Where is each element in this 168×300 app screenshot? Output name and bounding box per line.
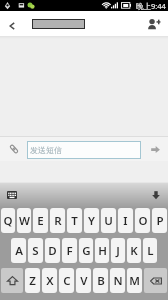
button[interactable]: N <box>110 268 125 293</box>
button[interactable]: F <box>62 238 77 263</box>
staticText: C <box>63 273 71 289</box>
staticText: H <box>98 243 107 259</box>
staticText: N <box>113 273 123 289</box>
button[interactable]: V <box>76 268 91 293</box>
staticText: G <box>82 243 91 259</box>
button[interactable]: C <box>59 268 74 293</box>
button[interactable]: Backspace <box>144 268 167 293</box>
button[interactable]: Z <box>25 268 40 293</box>
button[interactable]: 发送短信 <box>27 141 141 159</box>
staticText: I <box>123 213 128 229</box>
staticText: P <box>156 213 164 229</box>
button[interactable]: X <box>42 268 57 293</box>
button[interactable]: Back <box>0 11 32 36</box>
button[interactable]: Add contact <box>140 11 168 36</box>
staticText: F <box>66 243 73 259</box>
button[interactable]: Keyboard <box>5 188 19 202</box>
button[interactable]: O <box>135 208 150 233</box>
staticText: Z <box>29 273 36 289</box>
staticText: X <box>46 273 54 289</box>
button[interactable]: J <box>111 238 125 263</box>
button[interactable]: D <box>45 238 60 263</box>
staticText: K <box>130 243 138 259</box>
staticText: R <box>54 213 62 229</box>
staticText: L <box>147 243 154 259</box>
button[interactable]: E <box>33 208 48 233</box>
button[interactable]: T <box>67 208 82 233</box>
button[interactable]: S <box>28 238 43 263</box>
staticText: M <box>129 273 140 289</box>
button[interactable]: U <box>101 208 116 233</box>
staticText: A <box>15 243 23 259</box>
staticText: Y <box>88 213 95 229</box>
staticText: B <box>97 273 105 289</box>
staticText: E <box>37 213 44 229</box>
button[interactable]: Y <box>84 208 99 233</box>
staticText: S <box>32 243 39 259</box>
staticText: D <box>48 243 57 259</box>
staticText: 晚上9:44 <box>136 1 166 11</box>
button[interactable]: I <box>118 208 133 233</box>
staticText: O <box>138 213 148 229</box>
button[interactable]: Shift <box>1 268 23 293</box>
button[interactable]: A <box>11 238 26 263</box>
button[interactable]: W <box>17 208 31 233</box>
button[interactable]: G <box>79 238 93 263</box>
button[interactable]: H <box>95 238 109 263</box>
button[interactable]: P <box>152 208 167 233</box>
staticText: J <box>116 243 120 259</box>
staticText: U <box>104 213 113 229</box>
staticText: Q <box>3 213 13 229</box>
staticText: 发送短信 <box>30 145 62 155</box>
button[interactable]: K <box>127 238 141 263</box>
button[interactable]: B <box>93 268 108 293</box>
staticText: V <box>80 273 88 289</box>
button[interactable]: M <box>127 268 142 293</box>
button[interactable]: Attach <box>0 137 27 161</box>
button[interactable]: L <box>143 238 157 263</box>
button[interactable]: Q <box>1 208 15 233</box>
staticText: T <box>71 213 78 229</box>
staticText: W <box>19 213 30 229</box>
button[interactable]: R <box>50 208 65 233</box>
button[interactable]: Send <box>142 137 168 161</box>
button[interactable]: Hide keyboard <box>149 188 163 202</box>
